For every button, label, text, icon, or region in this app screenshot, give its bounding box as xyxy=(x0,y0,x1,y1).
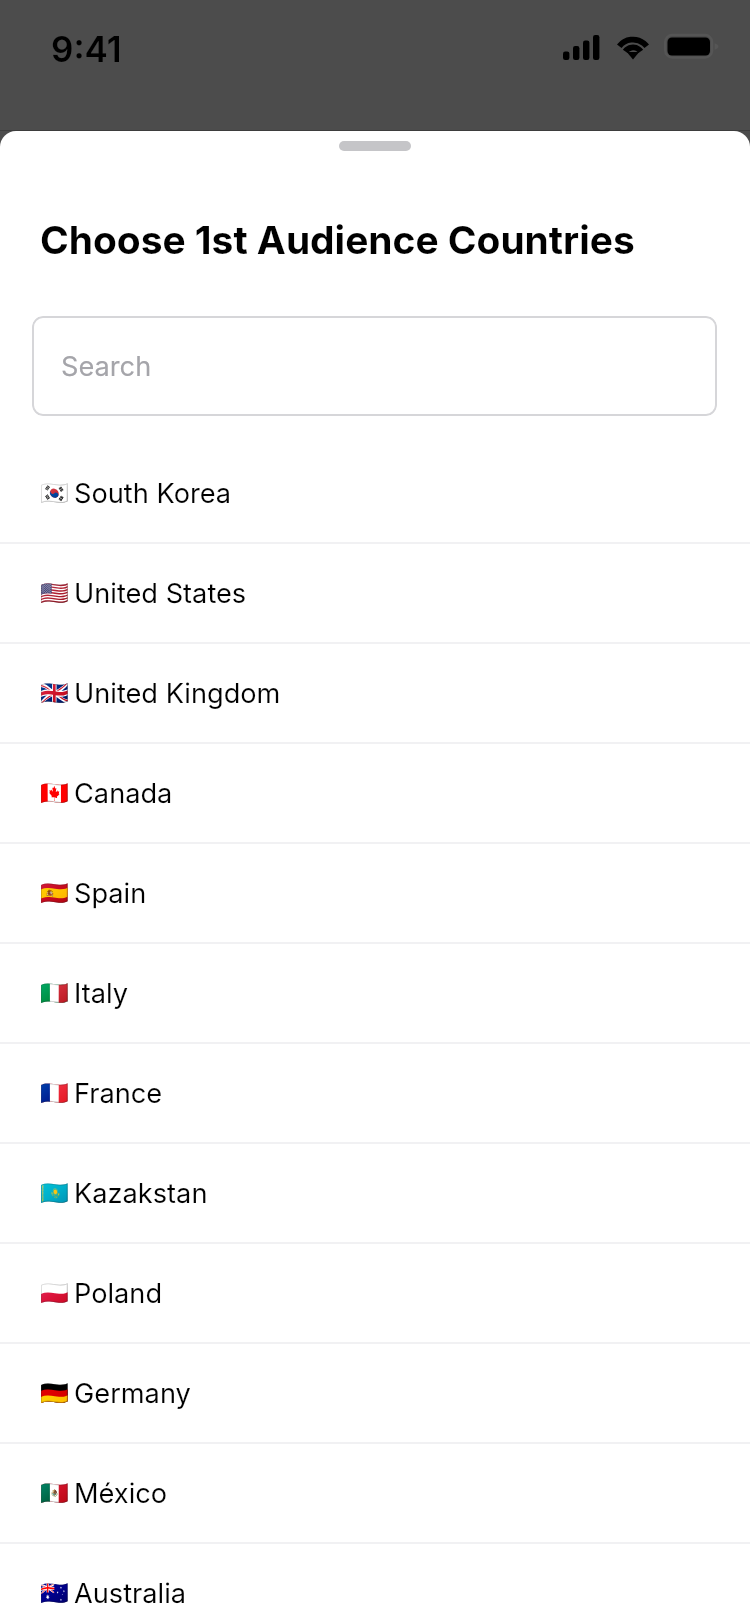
button[interactable]: 🇩🇪 xyxy=(0,1344,750,1444)
button[interactable]: 🇮🇹 xyxy=(0,944,750,1044)
staticText: Kazakstan xyxy=(74,1177,208,1210)
button[interactable]: 🇦🇺 xyxy=(0,1544,750,1624)
staticText: 🇲🇽 xyxy=(40,1480,69,1507)
staticText: United Kingdom xyxy=(74,677,281,710)
staticText: France xyxy=(74,1077,163,1110)
other: Wi-Fi xyxy=(613,32,653,62)
staticText: 🇨🇦 xyxy=(40,780,69,807)
staticText: Spain xyxy=(74,877,147,910)
button[interactable]: Search xyxy=(32,316,717,416)
staticText: Search xyxy=(61,350,152,383)
staticText: 🇩🇪 xyxy=(40,1380,69,1407)
staticText: 9:41 xyxy=(51,28,122,70)
staticText: Australia xyxy=(74,1577,187,1610)
other: Cellular signal xyxy=(563,34,601,61)
button[interactable]: 🇬🇧 xyxy=(0,644,750,744)
staticText: 🇺🇸 xyxy=(40,580,69,607)
staticText: 🇫🇷 xyxy=(40,1080,69,1107)
button[interactable]: 🇪🇸 xyxy=(0,844,750,944)
staticText: 🇰🇿 xyxy=(40,1180,69,1207)
staticText: Choose 1st Audience Countries xyxy=(40,216,635,263)
staticText: 🇪🇸 xyxy=(40,880,69,907)
staticText: Canada xyxy=(74,777,173,810)
staticText: Italy xyxy=(74,977,128,1010)
staticText: 🇬🇧 xyxy=(40,680,69,707)
staticText: South Korea xyxy=(74,477,232,510)
staticText: 🇰🇷 xyxy=(40,480,69,507)
staticText: United States xyxy=(74,577,247,610)
button[interactable]: 🇵🇱 xyxy=(0,1244,750,1344)
button[interactable]: 🇰🇿 xyxy=(0,1144,750,1244)
button[interactable]: 🇫🇷 xyxy=(0,1044,750,1144)
button[interactable]: 🇰🇷 xyxy=(0,444,750,544)
button[interactable]: Drag handle xyxy=(339,141,411,151)
staticText: Germany xyxy=(74,1377,191,1410)
staticText: Poland xyxy=(74,1277,163,1310)
staticText: 🇵🇱 xyxy=(40,1280,69,1307)
staticText: 🇦🇺 xyxy=(40,1580,69,1607)
staticText: 🇮🇹 xyxy=(40,980,69,1007)
other: Battery xyxy=(662,33,722,61)
button[interactable]: 🇲🇽 xyxy=(0,1444,750,1544)
staticText: México xyxy=(74,1477,168,1510)
button[interactable]: 🇨🇦 xyxy=(0,744,750,844)
button[interactable]: 🇺🇸 xyxy=(0,544,750,644)
